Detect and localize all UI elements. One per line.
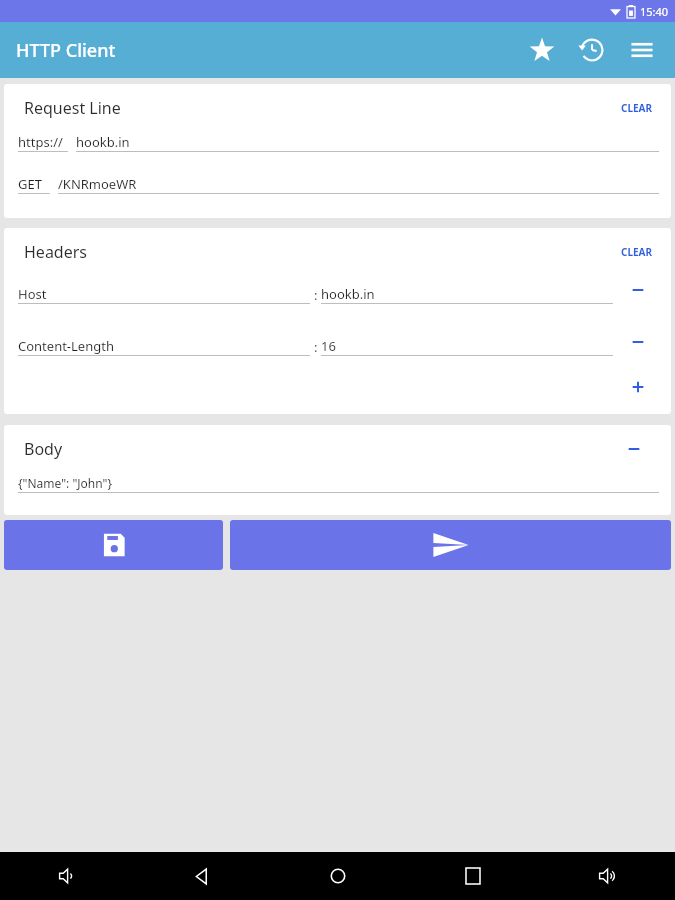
staticText: hookb.in [76,133,130,151]
button[interactable]: Send request [230,520,671,570]
button[interactable]: CLEAR [615,241,659,263]
button[interactable]: Content-Length [18,336,310,356]
staticText: CLEAR [621,245,653,259]
staticText: GET [18,175,42,193]
staticText: Headers [24,241,87,263]
staticText: /KNRmoeWR [58,175,137,193]
staticText: CLEAR [621,101,653,115]
button[interactable]: CLEAR [615,97,659,119]
button[interactable]: Host [18,284,310,304]
staticText: 16 [321,337,336,355]
button[interactable]: hookb.in [321,284,613,304]
button[interactable]: https:// [18,132,659,152]
staticText: Content-Length [18,337,114,355]
button[interactable]: Remove header Content-Length [613,328,663,356]
button[interactable]: Save request [4,520,223,570]
staticText: : [314,286,318,304]
staticText: 15:40 [640,4,669,19]
staticText: : [314,338,318,356]
button[interactable]: 16 [321,336,613,356]
button[interactable]: Menu [621,29,663,71]
button[interactable]: Favorites [521,29,563,71]
staticText: hookb.in [321,285,375,303]
staticText: https:// [18,133,63,151]
button[interactable]: History [571,29,613,71]
staticText: Body [24,438,63,460]
button[interactable]: GET [18,174,659,194]
button[interactable]: Add header [613,370,663,404]
button[interactable]: {"Name": "John"} [18,473,659,493]
button[interactable]: Remove header Host [613,276,663,304]
button[interactable]: Home [270,852,405,900]
button[interactable]: Recent apps [405,852,540,900]
staticText: {"Name": "John"} [18,475,113,491]
staticText: Request Line [24,97,121,119]
button[interactable]: Volume up [540,852,675,900]
staticText: Host [18,285,47,303]
button[interactable]: Remove body [619,434,649,464]
button[interactable]: Volume down [0,852,135,900]
button[interactable]: Back [135,852,270,900]
staticText: HTTP Client [16,38,116,63]
